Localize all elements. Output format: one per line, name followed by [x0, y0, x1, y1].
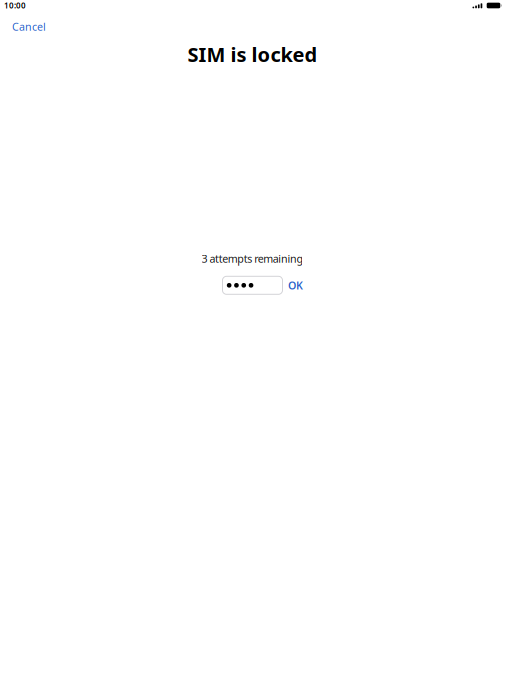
button[interactable]: Cancel	[0, 9, 58, 38]
staticText: 3 attempts remaining	[202, 252, 303, 266]
staticText: Cancel	[12, 19, 46, 34]
staticText: 10:00	[4, 0, 26, 11]
button[interactable]: OK	[285, 275, 306, 295]
staticText: OK	[288, 278, 303, 292]
staticText: SIM is locked	[187, 41, 317, 68]
